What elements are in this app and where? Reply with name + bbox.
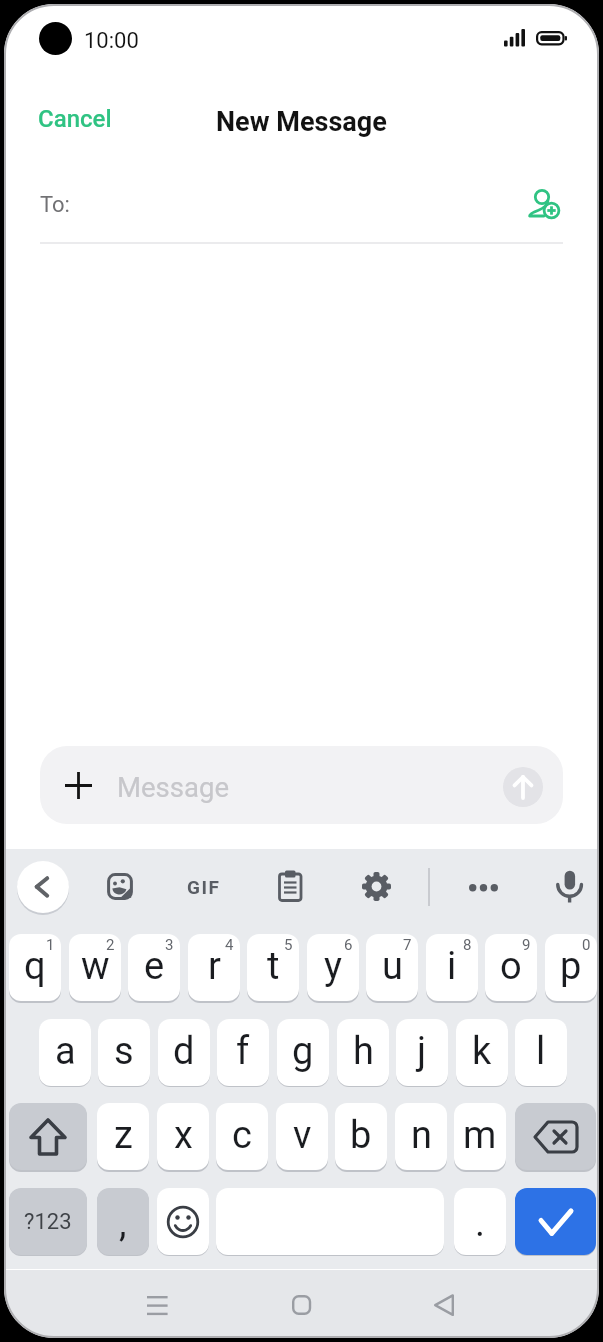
staticText: 0 (582, 936, 591, 954)
button[interactable]: s (98, 1019, 150, 1086)
staticText: 10:00 (84, 28, 139, 54)
staticText: GIF (187, 876, 221, 898)
button[interactable]: h (337, 1019, 389, 1086)
staticText: g (292, 1029, 314, 1074)
staticText: p (560, 944, 582, 989)
button[interactable]: c (216, 1103, 268, 1170)
button[interactable]: w (69, 934, 121, 1001)
button[interactable] (555, 869, 585, 904)
button[interactable] (515, 1103, 596, 1170)
button[interactable] (362, 872, 391, 901)
staticText: o (500, 944, 522, 989)
staticText: 1 (46, 936, 55, 954)
staticText: New Message (216, 106, 387, 138)
staticText: 9 (522, 936, 531, 954)
button[interactable]: l (515, 1019, 567, 1086)
staticText: a (55, 1029, 76, 1074)
button[interactable]: b (335, 1103, 387, 1170)
staticText: . (475, 1201, 486, 1246)
button[interactable]: f (217, 1019, 269, 1086)
button[interactable]: d (158, 1019, 210, 1086)
button[interactable]: q (9, 934, 61, 1001)
staticText: m (463, 1113, 497, 1158)
button[interactable]: z (97, 1103, 149, 1170)
staticText: k (472, 1029, 492, 1074)
staticText: y (324, 944, 342, 989)
button[interactable]: j (396, 1019, 448, 1086)
staticText: , (119, 1201, 127, 1246)
button[interactable]: t (247, 934, 299, 1001)
staticText: i (447, 944, 457, 989)
staticText: 4 (225, 936, 234, 954)
button[interactable] (469, 884, 498, 891)
staticText: 5 (284, 936, 293, 954)
button[interactable]: g (277, 1019, 329, 1086)
button[interactable]: u (366, 934, 418, 1001)
staticText: z (114, 1113, 133, 1158)
button[interactable]: k (456, 1019, 508, 1086)
staticText: q (24, 944, 46, 989)
button[interactable]: , (97, 1188, 149, 1255)
button[interactable]: v (276, 1103, 328, 1170)
button[interactable]: y (307, 934, 359, 1001)
staticText: b (350, 1113, 372, 1158)
button[interactable]: n (395, 1103, 447, 1170)
staticText: v (293, 1113, 312, 1158)
button[interactable] (292, 1295, 311, 1315)
button[interactable] (503, 767, 543, 807)
staticText: 7 (403, 936, 412, 954)
staticText: Cancel (38, 105, 112, 133)
button[interactable] (107, 873, 133, 900)
button[interactable]: GIF (174, 873, 234, 900)
staticText: c (232, 1113, 252, 1158)
button[interactable]: o (485, 934, 537, 1001)
staticText: To: (40, 192, 70, 218)
button[interactable] (526, 182, 562, 220)
staticText: j (417, 1029, 427, 1074)
button[interactable] (434, 1294, 454, 1316)
staticText: x (174, 1113, 193, 1158)
staticText: 8 (463, 936, 472, 954)
button[interactable]: e (128, 934, 180, 1001)
button[interactable]: Cancel (27, 96, 122, 141)
button[interactable] (278, 870, 303, 902)
button[interactable]: a (39, 1019, 91, 1086)
button[interactable]: p (545, 934, 597, 1001)
staticText: u (382, 944, 403, 989)
staticText: t (267, 944, 280, 989)
staticText: r (208, 944, 221, 989)
button[interactable] (17, 861, 69, 913)
staticText: s (114, 1029, 134, 1074)
staticText: h (353, 1029, 374, 1074)
button[interactable]: ?123 (9, 1188, 87, 1255)
button[interactable]: Message (40, 746, 563, 824)
button[interactable]: i (426, 934, 478, 1001)
staticText: Message (117, 771, 229, 803)
button[interactable]: m (454, 1103, 506, 1170)
staticText: 6 (344, 936, 353, 954)
staticText: 3 (165, 936, 174, 954)
button[interactable]: x (157, 1103, 209, 1170)
staticText: e (144, 944, 165, 989)
button[interactable]: . (454, 1188, 506, 1255)
staticText: l (536, 1029, 546, 1074)
staticText: f (236, 1029, 250, 1074)
button[interactable] (147, 1296, 168, 1315)
staticText: 2 (106, 936, 115, 954)
staticText: n (411, 1113, 432, 1158)
button[interactable] (9, 1103, 87, 1170)
staticText: d (173, 1029, 195, 1074)
button[interactable] (157, 1188, 209, 1255)
button[interactable]: r (188, 934, 240, 1001)
staticText: ?123 (24, 1209, 72, 1235)
button[interactable] (515, 1188, 596, 1255)
staticText: w (81, 944, 110, 989)
